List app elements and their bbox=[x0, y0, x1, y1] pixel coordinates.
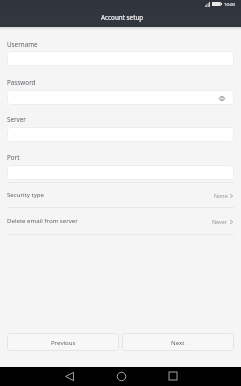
staticText: 10:00 bbox=[224, 1, 235, 7]
button[interactable]: Recents bbox=[168, 371, 178, 381]
staticText: None bbox=[214, 192, 228, 199]
button[interactable]: Next bbox=[122, 333, 234, 351]
staticText: Server bbox=[7, 115, 26, 124]
staticText: Next bbox=[171, 338, 185, 346]
staticText: Password bbox=[7, 78, 36, 87]
button[interactable]: Security type bbox=[0, 182, 241, 207]
staticText: Port bbox=[7, 153, 20, 162]
button[interactable]: Back bbox=[64, 371, 74, 381]
button[interactable]: Show password bbox=[216, 93, 227, 104]
staticText: Previous bbox=[51, 338, 76, 346]
staticText: Account setup bbox=[101, 13, 144, 22]
button[interactable] bbox=[7, 51, 234, 66]
staticText: Delete email from server bbox=[7, 216, 78, 224]
button[interactable] bbox=[7, 127, 234, 142]
button[interactable]: Delete email from server bbox=[0, 207, 241, 234]
button[interactable]: Show password bbox=[7, 90, 234, 105]
staticText: Username bbox=[7, 40, 38, 49]
button[interactable] bbox=[7, 165, 234, 180]
staticText: Security type bbox=[7, 190, 44, 198]
button[interactable]: Previous bbox=[7, 333, 119, 351]
staticText: Never bbox=[212, 218, 228, 225]
button[interactable]: Home bbox=[116, 371, 126, 381]
